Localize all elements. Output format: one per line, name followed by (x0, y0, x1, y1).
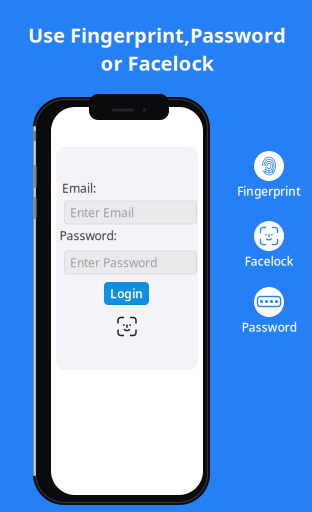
button[interactable]: Fingerprint (237, 151, 301, 199)
staticText: Use Fingerprint,Password (28, 22, 286, 48)
staticText: Enter Email (70, 204, 134, 220)
button[interactable]: Face ID login (117, 316, 137, 336)
staticText: Login (110, 285, 143, 301)
staticText: Password (241, 319, 296, 335)
button[interactable]: Facelock (244, 221, 293, 269)
staticText: Facelock (244, 253, 293, 269)
button[interactable]: Login (104, 282, 149, 305)
staticText: Enter Password (70, 254, 157, 270)
staticText: Email: (62, 180, 96, 196)
staticText: Fingerprint (237, 183, 301, 199)
staticText: or Facelock (100, 50, 213, 76)
staticText: Password: (59, 227, 116, 243)
button[interactable]: Password (241, 287, 296, 335)
